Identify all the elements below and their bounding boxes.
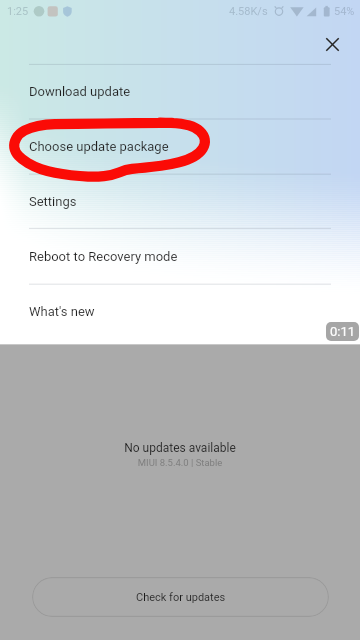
staticText: MIUI 8.5.4.0 | Stable <box>0 457 360 468</box>
staticText: 0:11 <box>330 324 356 339</box>
staticText: 1:25 <box>7 5 29 18</box>
button[interactable]: Reboot to Recovery mode <box>0 228 360 284</box>
staticText: Reboot to Recovery mode <box>29 249 178 264</box>
button[interactable]: Check for updates <box>32 577 329 617</box>
button[interactable]: Choose update package <box>0 119 360 174</box>
staticText: Check for updates <box>136 591 226 604</box>
button[interactable]: What's new <box>0 284 360 338</box>
button[interactable]: Settings <box>0 174 360 228</box>
staticText: Choose update package <box>29 139 169 154</box>
staticText: 4.58K/s <box>229 5 268 18</box>
button[interactable]: Download update <box>0 64 360 119</box>
staticText: Settings <box>29 194 77 209</box>
staticText: No updates available <box>0 441 360 455</box>
staticText: What's new <box>29 304 95 319</box>
button[interactable]: Close <box>310 22 354 66</box>
staticText: Download update <box>29 84 131 99</box>
staticText: 54% <box>334 5 355 18</box>
